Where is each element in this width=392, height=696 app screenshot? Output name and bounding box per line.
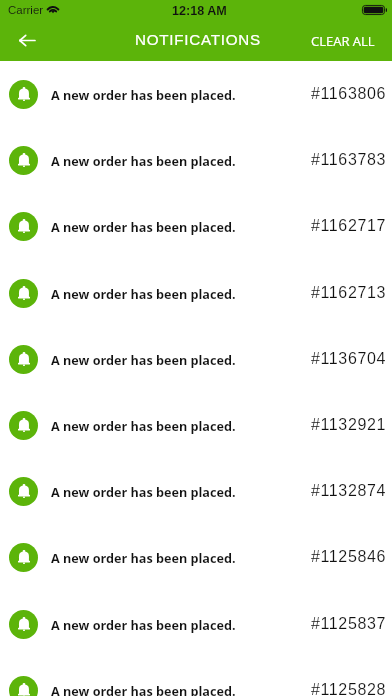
staticText: A new order has been placed.: [51, 682, 236, 696]
staticText: #1136704: [311, 350, 386, 368]
button[interactable]: A new order has been placed.: [0, 61, 392, 127]
staticText: #1162717: [311, 217, 386, 235]
staticText: A new order has been placed.: [51, 86, 236, 103]
button[interactable]: CLEAR ALL: [311, 32, 392, 61]
staticText: #1132874: [311, 482, 386, 500]
staticText: #1125828: [311, 681, 386, 696]
staticText: A new order has been placed.: [51, 285, 236, 302]
button[interactable]: A new order has been placed.: [0, 458, 392, 524]
staticText: #1163806: [311, 85, 386, 103]
staticText: #1125837: [311, 615, 386, 633]
staticText: NOTIFICATIONS: [135, 31, 261, 48]
staticText: A new order has been placed.: [51, 152, 236, 169]
button[interactable]: A new order has been placed.: [0, 260, 392, 326]
button[interactable]: A new order has been placed.: [0, 392, 392, 458]
button[interactable]: A new order has been placed.: [0, 591, 392, 657]
button[interactable]: A new order has been placed.: [0, 524, 392, 590]
staticText: 12:18 AM: [172, 4, 227, 18]
staticText: A new order has been placed.: [51, 616, 236, 633]
button[interactable]: A new order has been placed.: [0, 657, 392, 696]
staticText: Carrier: [8, 4, 44, 17]
button[interactable]: A new order has been placed.: [0, 326, 392, 392]
staticText: A new order has been placed.: [51, 549, 236, 566]
staticText: A new order has been placed.: [51, 351, 236, 368]
staticText: A new order has been placed.: [51, 417, 236, 434]
button[interactable]: A new order has been placed.: [0, 127, 392, 193]
staticText: #1162713: [311, 284, 386, 302]
staticText: A new order has been placed.: [51, 483, 236, 500]
button[interactable]: A new order has been placed.: [0, 193, 392, 259]
staticText: #1163783: [311, 151, 386, 169]
staticText: CLEAR ALL: [311, 32, 375, 50]
staticText: #1125846: [311, 548, 386, 566]
button[interactable]: Back: [9, 22, 45, 58]
staticText: #1132921: [311, 416, 386, 434]
staticText: A new order has been placed.: [51, 218, 236, 235]
